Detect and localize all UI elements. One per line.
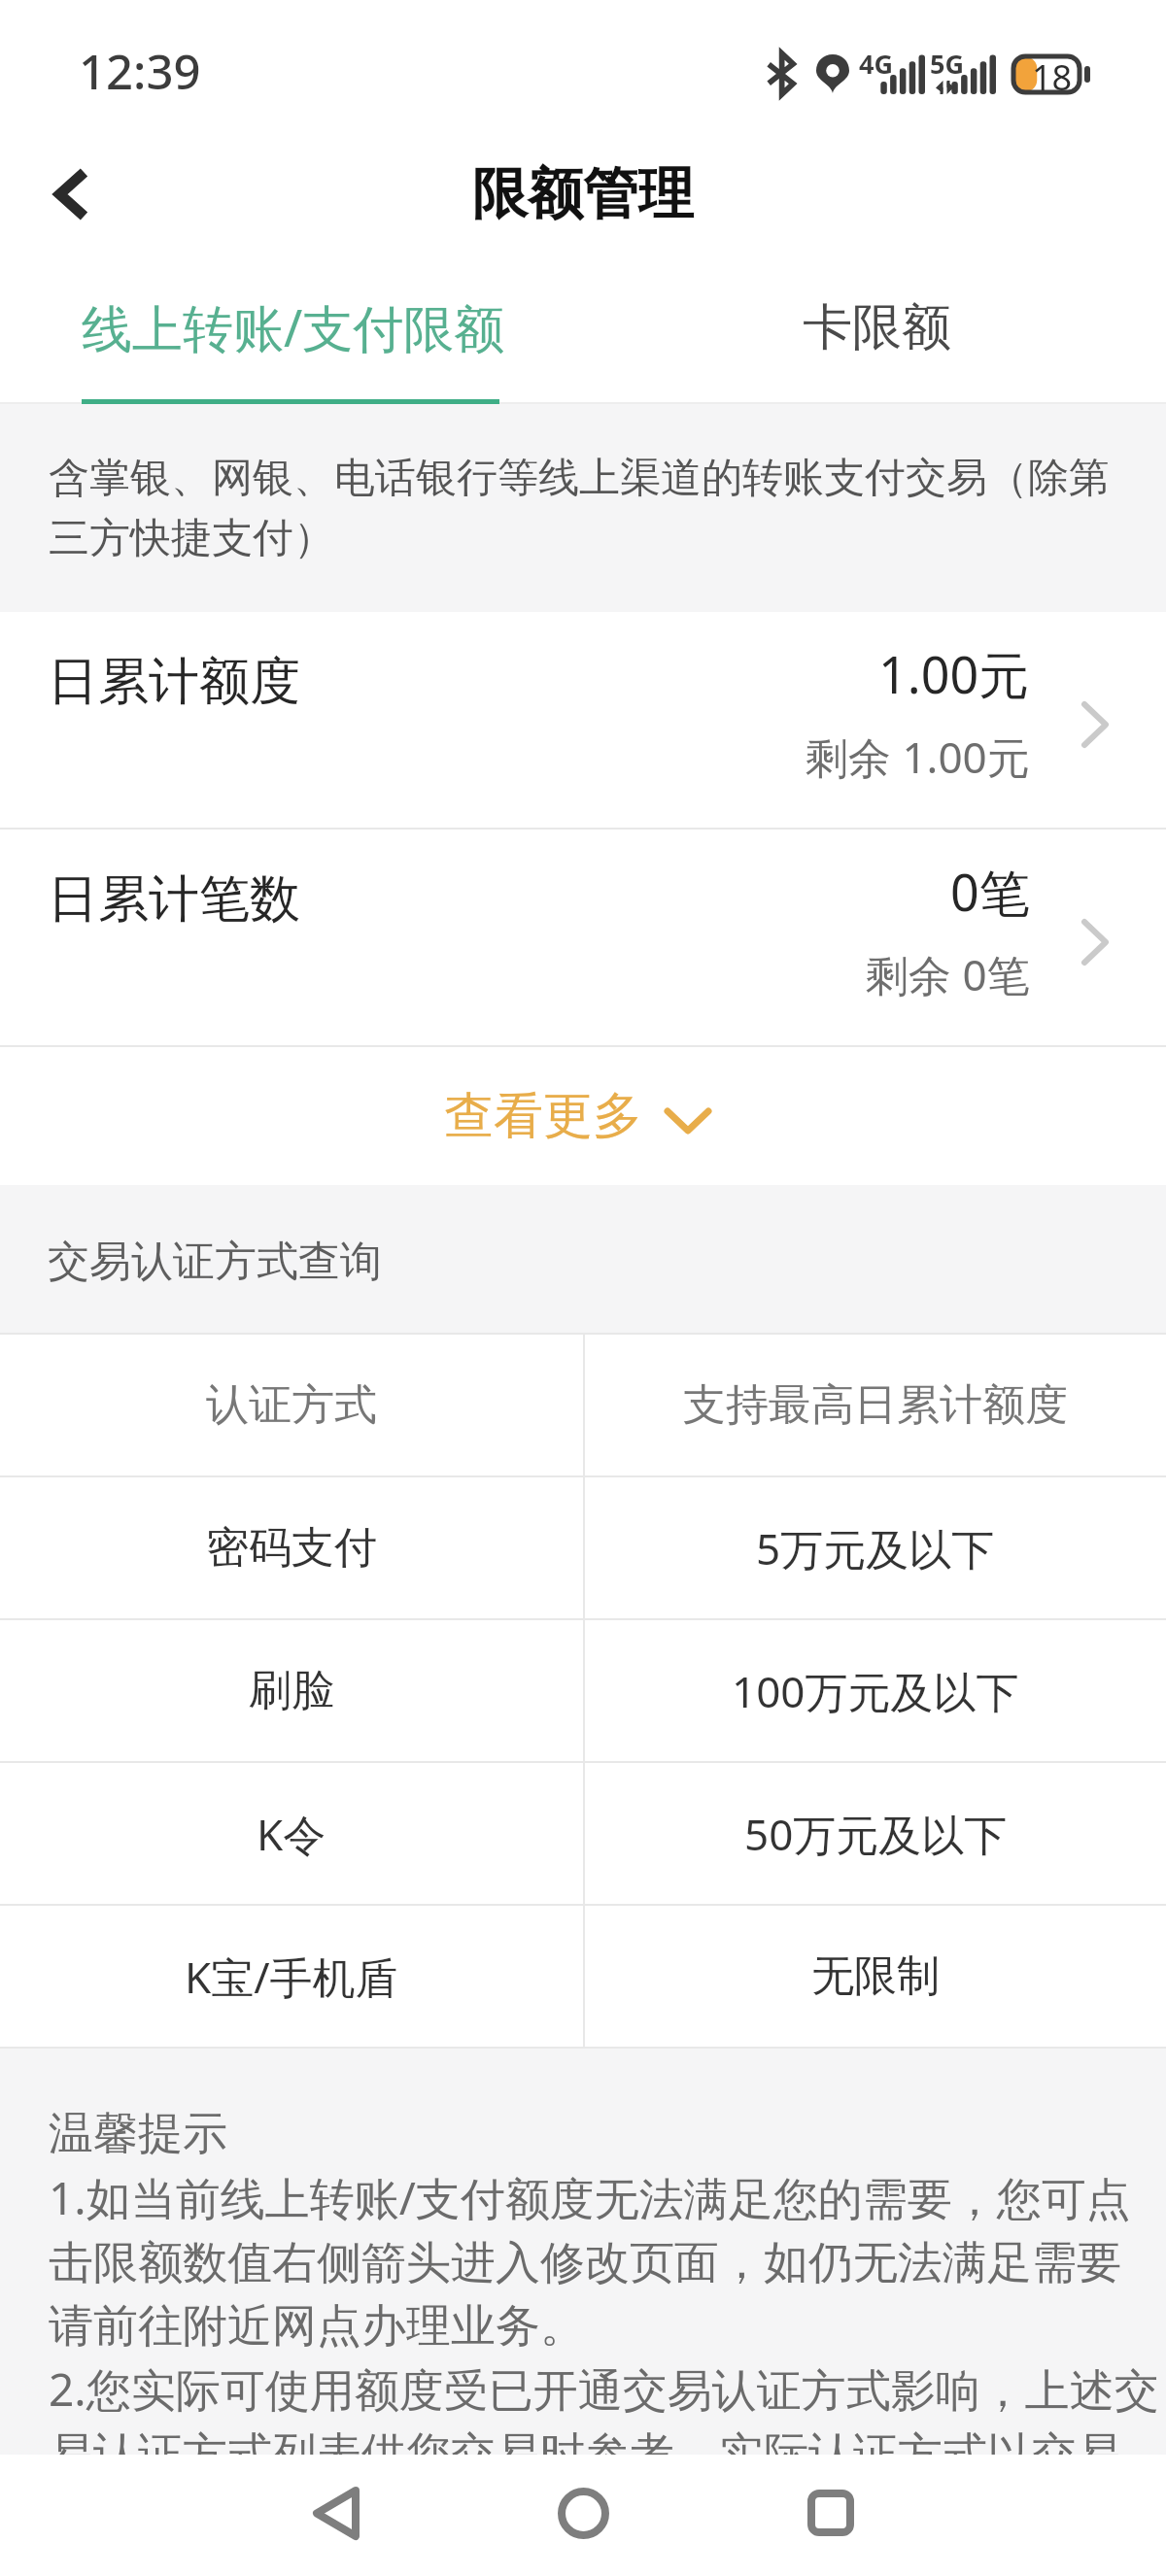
staticText: 日累计额度 xyxy=(48,650,300,714)
staticText: 0笔 xyxy=(950,857,1030,926)
staticText: 日累计笔数 xyxy=(48,867,300,932)
button[interactable]: 查看更多 xyxy=(0,1047,1166,1185)
button[interactable]: 日累计笔数 xyxy=(0,830,1166,1045)
staticText: 无限制 xyxy=(811,1949,940,2003)
staticText: 密码支付 xyxy=(206,1521,377,1575)
staticText: 剩余 0笔 xyxy=(866,945,1030,1003)
staticText: 5万元及以下 xyxy=(756,1519,995,1577)
button[interactable]: 卡限额 xyxy=(583,258,1166,404)
staticText: 12:39 xyxy=(79,39,201,104)
staticText: 刷脸 xyxy=(249,1664,334,1717)
button[interactable]: Home xyxy=(525,2455,641,2571)
staticText: 线上转账/支付限额 xyxy=(82,292,505,361)
button[interactable]: 线上转账/支付限额 xyxy=(0,258,583,404)
button[interactable]: Back xyxy=(0,130,144,258)
staticText: 限额管理 xyxy=(472,159,694,229)
staticText: 50万元及以下 xyxy=(744,1805,1008,1863)
staticText: K令 xyxy=(257,1805,326,1863)
staticText: 卡限额 xyxy=(803,296,951,358)
staticText: 5G xyxy=(930,46,964,82)
staticText: 查看更多 xyxy=(444,1085,642,1147)
staticText: 4G xyxy=(859,46,893,82)
staticText: 100万元及以下 xyxy=(732,1662,1019,1720)
staticText: 1.00元 xyxy=(878,639,1030,708)
button[interactable]: 日累计额度 xyxy=(0,612,1166,828)
staticText: 含掌银、网银、电话银行等线上渠道的转账支付交易（除第三方快捷支付） xyxy=(49,453,1121,564)
staticText: 剩余 1.00元 xyxy=(806,728,1030,786)
staticText: 18 xyxy=(1032,53,1073,93)
staticText: 温馨提示 1.如当前线上转账/支付额度无法满足您的需要，您可点击限额数值右侧箭头… xyxy=(49,2106,1162,2455)
staticText: 交易认证方式查询 xyxy=(48,1236,382,1288)
staticText: 支持最高日累计额度 xyxy=(683,1378,1068,1432)
button[interactable]: Recent apps xyxy=(772,2455,889,2571)
button[interactable]: Back xyxy=(278,2455,394,2571)
staticText: 认证方式 xyxy=(206,1378,377,1432)
staticText: K宝/手机盾 xyxy=(185,1948,398,2006)
